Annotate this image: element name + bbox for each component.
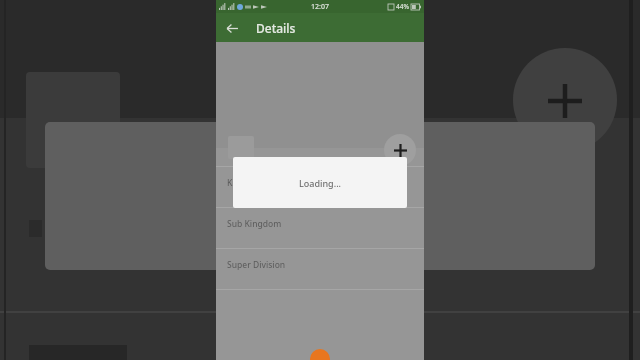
button[interactable]: Loading... xyxy=(233,157,407,208)
button[interactable]: Kingdom xyxy=(216,167,424,207)
button[interactable]: Sub Kingdom xyxy=(216,208,424,248)
staticText: 44% xyxy=(396,2,409,11)
staticText: Sub Kingdom xyxy=(227,218,282,230)
staticText: Loading... xyxy=(299,177,342,189)
staticText: Super Division xyxy=(227,259,286,271)
button[interactable]: Back xyxy=(222,18,242,38)
button[interactable]: Add xyxy=(384,134,416,166)
staticText: Details xyxy=(256,20,296,36)
button[interactable]: Super Division xyxy=(216,249,424,289)
staticText: 12:07 xyxy=(311,2,329,12)
staticText: Kingdom xyxy=(227,177,264,189)
